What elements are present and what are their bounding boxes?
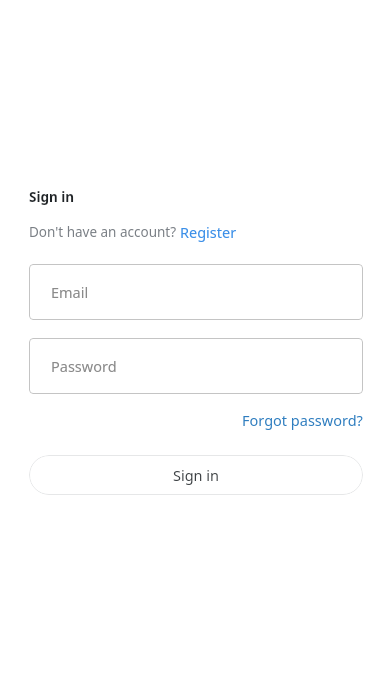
staticText: Password [51,356,117,376]
button[interactable]: Forgot password? [242,406,363,434]
staticText: Email [51,282,89,302]
button[interactable]: Register [180,222,237,242]
staticText: Don't have an account? [29,223,180,241]
button[interactable]: Password [29,338,363,394]
button[interactable]: Sign in [29,455,363,495]
staticText: Forgot password? [242,410,363,430]
staticText: Register [180,222,237,242]
staticText: Sign in [173,465,220,485]
staticText: Sign in [29,188,75,206]
button[interactable]: Email [29,264,363,320]
